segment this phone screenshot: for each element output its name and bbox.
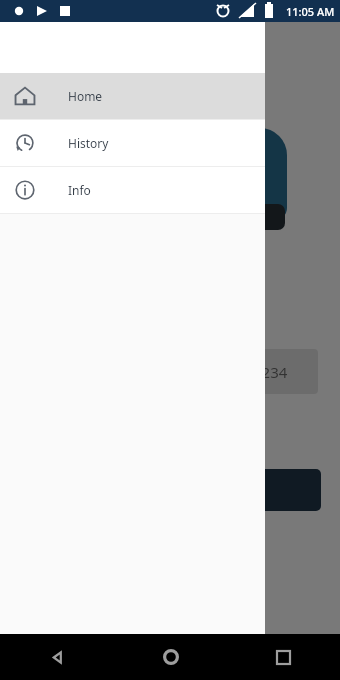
button[interactable]: Home — [114, 634, 227, 680]
button[interactable]: Recent apps — [227, 634, 340, 680]
staticText: Info — [68, 182, 91, 198]
staticText: History — [68, 135, 109, 151]
button[interactable]: Info — [0, 167, 265, 213]
button[interactable]: History — [0, 120, 265, 166]
button[interactable]: 1234 — [204, 349, 318, 394]
button[interactable] — [197, 469, 321, 511]
button[interactable]: Back — [0, 634, 114, 680]
staticText: 11:05 AM — [286, 4, 335, 19]
staticText: 1234 — [253, 362, 288, 382]
staticText: Home — [68, 88, 103, 104]
button[interactable]: Home — [0, 73, 265, 119]
